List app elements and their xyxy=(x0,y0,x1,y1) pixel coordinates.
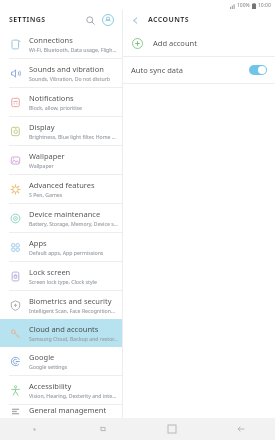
button[interactable]: Connections xyxy=(0,30,122,58)
staticText: Screen lock type, Clock style xyxy=(29,278,97,285)
staticText: Intelligent Scan, Face Recognition... xyxy=(29,307,116,314)
staticText: Wallpaper xyxy=(29,151,65,161)
button[interactable]: Device maintenance xyxy=(0,204,122,232)
staticText: Notifications xyxy=(29,93,74,103)
staticText: 10:00 xyxy=(258,2,271,9)
staticText: Brightness, Blue light filter, Home sc..… xyxy=(29,133,118,140)
staticText: Cloud and accounts xyxy=(29,324,99,334)
staticText: Lock screen xyxy=(29,267,71,277)
button[interactable]: Account xyxy=(100,12,116,28)
staticText: Battery, Storage, Memory, Device se... xyxy=(29,220,118,227)
staticText: Google xyxy=(29,352,55,362)
staticText: Samsung Cloud, Backup and restor... xyxy=(29,335,118,342)
button[interactable]: Auto sync data xyxy=(123,57,275,83)
button[interactable]: Biometrics and security xyxy=(0,291,122,319)
button[interactable]: Notifications xyxy=(0,88,122,116)
button[interactable]: Search xyxy=(82,12,98,28)
staticText: Device maintenance xyxy=(29,209,101,219)
button[interactable]: Apps xyxy=(0,233,122,261)
staticText: General management xyxy=(29,405,107,415)
staticText: ACCOUNTS xyxy=(148,15,190,25)
button[interactable]: Back xyxy=(206,418,275,440)
staticText: SETTINGS xyxy=(9,15,46,25)
button[interactable]: Accessibility xyxy=(0,376,122,404)
button[interactable]: Lock screen xyxy=(0,262,122,290)
button[interactable]: Wallpaper xyxy=(0,146,122,174)
button[interactable]: Cloud and accounts xyxy=(0,319,122,347)
staticText: Connections xyxy=(29,35,73,45)
staticText: Advanced features xyxy=(29,180,95,190)
button[interactable] xyxy=(249,65,267,75)
staticText: Auto sync data xyxy=(131,65,183,75)
button[interactable]: General management xyxy=(0,405,122,418)
staticText: Biometrics and security xyxy=(29,296,112,306)
button[interactable]: Back xyxy=(128,13,142,27)
staticText: Sounds, Vibration, Do not disturb xyxy=(29,75,110,82)
staticText: Vision, Hearing, Dexterity and intera... xyxy=(29,392,118,399)
staticText: Sounds and vibration xyxy=(29,64,104,74)
button[interactable]: Home xyxy=(137,418,206,440)
button[interactable]: Sounds and vibration xyxy=(0,59,122,87)
staticText: Default apps, App permissions xyxy=(29,249,104,256)
staticText: Add account xyxy=(153,38,197,48)
button[interactable]: Display xyxy=(0,117,122,145)
staticText: Display xyxy=(29,122,55,132)
staticText: Accessibility xyxy=(29,381,72,391)
button[interactable]: Recents xyxy=(68,418,137,440)
staticText: Apps xyxy=(29,238,47,248)
staticText: Block, allow, prioritise xyxy=(29,104,82,111)
staticText: Wi-Fi, Bluetooth, Data usage, Flight... xyxy=(29,46,118,53)
button[interactable]: Add account xyxy=(123,30,275,56)
button[interactable]: Advanced features xyxy=(0,175,122,203)
staticText: 100% xyxy=(237,2,250,9)
staticText: Google settings xyxy=(29,363,68,370)
staticText: S Pen, Games xyxy=(29,191,63,198)
button[interactable]: Google xyxy=(0,347,122,375)
staticText: Wallpaper xyxy=(29,162,54,169)
